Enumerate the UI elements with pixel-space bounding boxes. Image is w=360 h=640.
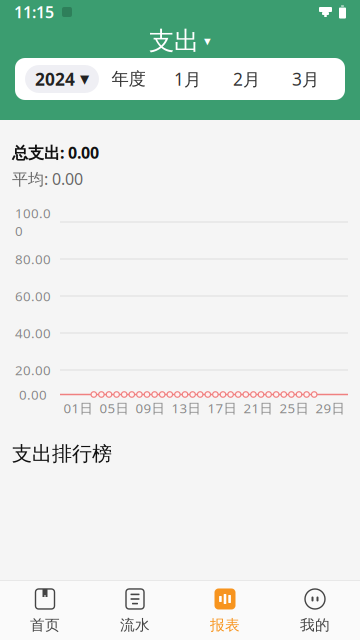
- staticText: 13日: [171, 399, 200, 417]
- button[interactable]: 流水: [90, 581, 180, 640]
- staticText: 29日: [315, 399, 344, 417]
- staticText: 我的: [300, 616, 330, 634]
- button[interactable]: 支出: [120, 24, 240, 58]
- button[interactable]: 3月: [276, 64, 335, 94]
- staticText: 支出排行榜: [12, 441, 112, 466]
- staticText: 60.00: [15, 287, 51, 305]
- staticText: 平均: 0.00: [12, 168, 83, 189]
- button[interactable]: 首页: [0, 581, 90, 640]
- staticText: 0.00: [19, 386, 47, 403]
- staticText: ▼: [80, 72, 89, 86]
- staticText: 2024: [35, 67, 75, 90]
- staticText: 1月: [174, 67, 201, 90]
- button[interactable]: 我的: [270, 581, 360, 640]
- staticText: 05日: [99, 399, 128, 417]
- staticText: 首页: [30, 616, 60, 634]
- button[interactable]: 2月: [217, 64, 276, 94]
- button[interactable]: 2024: [25, 65, 99, 93]
- staticText: 总支出: 0.00: [12, 142, 99, 163]
- button[interactable]: 报表: [180, 581, 270, 640]
- button[interactable]: 年度: [99, 64, 158, 94]
- staticText: 流水: [120, 616, 150, 634]
- staticText: 01日: [63, 399, 92, 417]
- staticText: 09日: [135, 399, 164, 417]
- staticText: ▾: [204, 33, 211, 48]
- staticText: 年度: [111, 68, 145, 90]
- staticText: 21日: [243, 399, 272, 417]
- staticText: 17日: [207, 399, 236, 417]
- staticText: 3月: [292, 67, 319, 90]
- staticText: 2月: [233, 67, 260, 90]
- staticText: 100.00: [15, 204, 51, 240]
- staticText: 40.00: [15, 324, 51, 342]
- staticText: 报表: [210, 616, 240, 634]
- staticText: 支出: [149, 25, 199, 56]
- staticText: 80.00: [15, 250, 51, 268]
- staticText: 25日: [279, 399, 308, 417]
- button[interactable]: 1月: [158, 64, 217, 94]
- staticText: 11:15: [14, 1, 54, 23]
- staticText: 20.00: [15, 361, 51, 379]
